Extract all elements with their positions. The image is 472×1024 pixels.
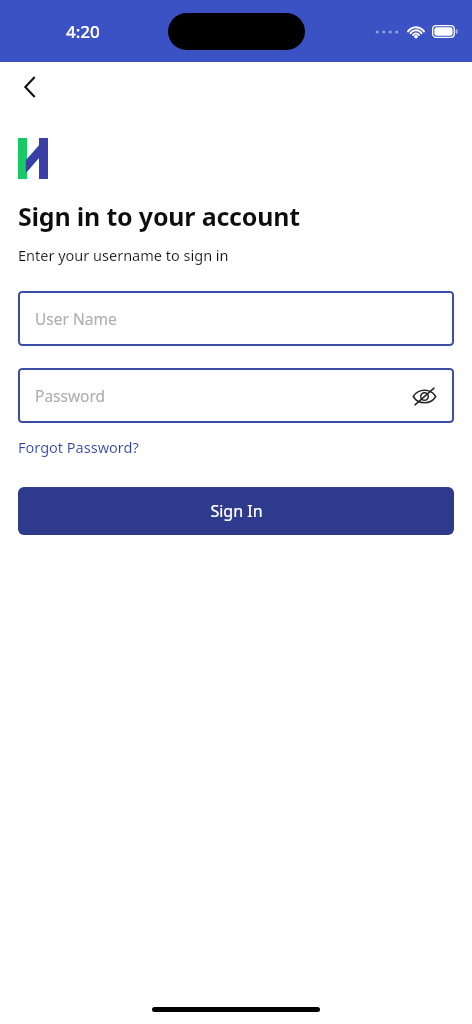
button[interactable]: Back [10,68,48,106]
staticText: Sign In [210,500,263,522]
staticText: Password [35,385,106,406]
staticText: Sign in to your account [18,199,300,233]
button[interactable]: User Name [18,291,454,346]
button[interactable]: Forgot Password? [18,435,139,459]
staticText: User Name [35,308,117,329]
button[interactable]: Sign In [18,487,454,535]
staticText: 4:20 [66,20,100,43]
button[interactable]: Show password [406,378,442,414]
staticText: Enter your username to sign in [18,245,229,265]
button[interactable]: Password [18,368,454,423]
staticText: Forgot Password? [18,437,139,457]
